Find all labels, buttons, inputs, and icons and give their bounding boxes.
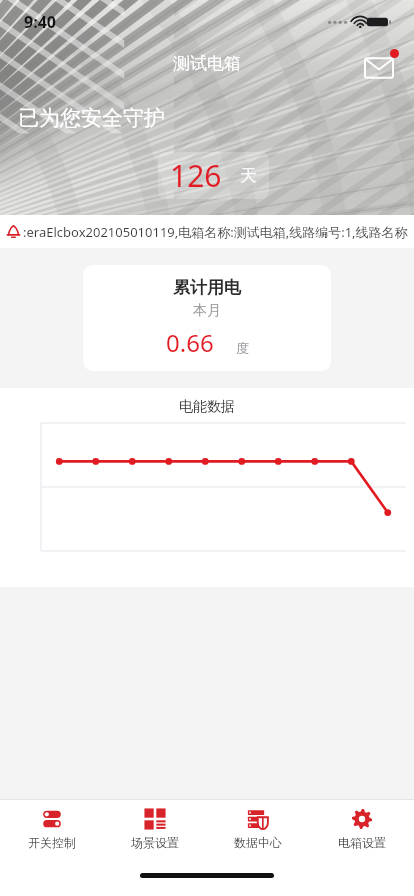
button[interactable]: 数据中心 [206,800,310,862]
staticText: 本月 [193,302,221,320]
button[interactable]: :eraElcbox202105010119,电箱名称:测试电箱,线路编号:1,… [0,215,414,248]
staticText: 已为您安全守护 [18,105,165,131]
button[interactable]: 累计用电 [83,265,331,371]
staticText: :eraElcbox202105010119,电箱名称:测试电箱,线路编号:1,… [23,223,408,241]
staticText: 数据中心 [234,835,282,850]
button[interactable]: Messages [358,46,400,88]
staticText: 电能数据 [0,398,414,416]
staticText: 场景设置 [131,835,179,850]
button[interactable]: 开关控制 [0,800,103,862]
staticText: 累计用电 [173,277,241,298]
staticText: 9:40 [24,11,56,33]
staticText: 0.66 [166,326,214,359]
staticText: 度 [236,340,249,356]
button[interactable]: 场景设置 [103,800,206,862]
staticText: 开关控制 [28,835,76,850]
staticText: 电箱设置 [338,835,386,850]
button[interactable]: 电箱设置 [310,800,414,862]
staticText: 126 [170,155,222,196]
staticText: 天 [240,165,257,186]
staticText: 测试电箱 [173,53,241,74]
